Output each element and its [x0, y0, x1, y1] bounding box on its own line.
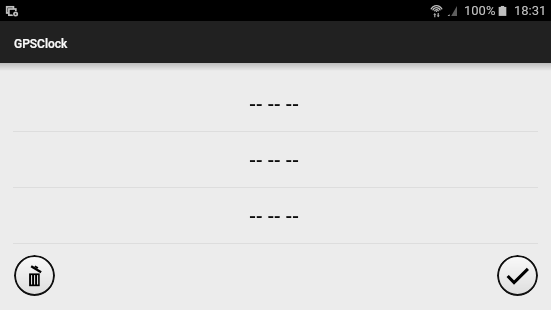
staticText: GPSClock [14, 37, 68, 51]
staticText: 100% [464, 3, 496, 18]
staticText: -- -- -- [249, 204, 299, 227]
button[interactable]: Delete [14, 255, 55, 296]
staticText: -- -- -- [249, 148, 299, 171]
button[interactable]: -- -- -- [0, 76, 551, 131]
staticText: 18:31 [514, 3, 547, 18]
button[interactable]: -- -- -- [0, 188, 551, 243]
staticText: -- -- -- [249, 92, 299, 115]
button[interactable]: -- -- -- [0, 132, 551, 187]
button[interactable]: Confirm [497, 255, 538, 296]
